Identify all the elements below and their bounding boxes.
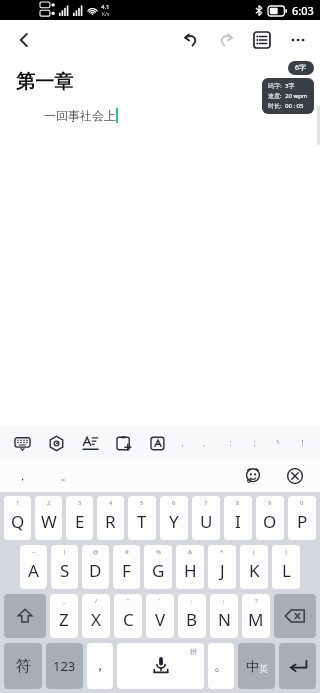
button[interactable]: & [176, 545, 204, 589]
button[interactable]: ' [146, 594, 174, 638]
button[interactable]: 0 [288, 496, 316, 540]
staticText: 中 [246, 658, 259, 674]
staticText: 4 [109, 499, 113, 507]
staticText: L [282, 559, 291, 582]
staticText: M [248, 608, 264, 631]
staticText: N [218, 608, 231, 631]
button[interactable]: 8 [224, 496, 252, 540]
staticText: Z [59, 608, 69, 631]
staticText: 2 [47, 499, 51, 507]
staticText: 9 [268, 499, 272, 507]
button[interactable]: Emoji [238, 461, 268, 491]
staticText: B [186, 608, 198, 631]
button[interactable]: ， [0, 459, 44, 492]
button[interactable]: 9 [256, 496, 284, 540]
staticText: ; [223, 597, 225, 605]
button[interactable]: 1 [4, 496, 31, 540]
staticText: ； [250, 437, 259, 448]
button[interactable]: Translate [148, 433, 168, 453]
button[interactable]: 。 [44, 459, 88, 492]
button[interactable]: ： [218, 426, 242, 459]
button[interactable]: 。 [208, 643, 234, 689]
button[interactable]: Redo [208, 22, 244, 58]
button[interactable]: Shift [4, 594, 46, 638]
staticText: 一回事社会上 [44, 108, 116, 123]
staticText: ( [253, 548, 255, 556]
staticText: U [200, 510, 213, 533]
button[interactable]: 2 [35, 496, 62, 540]
button[interactable]: 123 [46, 643, 83, 689]
staticText: 码字: [268, 82, 282, 90]
staticText: R [105, 510, 116, 533]
button[interactable]: ， [87, 643, 113, 689]
staticText: ? [255, 597, 258, 605]
button[interactable]: ~ [20, 545, 47, 589]
staticText: 拼 [190, 647, 197, 656]
button[interactable]: ? [242, 594, 270, 638]
button[interactable]: / [82, 594, 110, 638]
button[interactable]: | [51, 545, 78, 589]
staticText: 符 [16, 657, 31, 676]
button[interactable]: 中 [238, 643, 275, 689]
button[interactable]: Close keyboard [280, 461, 310, 491]
button[interactable]: 4 [97, 496, 124, 540]
button[interactable]: ( [240, 545, 268, 589]
button[interactable]: ； [242, 426, 266, 459]
button[interactable]: Enter [279, 643, 316, 689]
staticText: K/s [102, 11, 110, 18]
staticText: 速度: [268, 92, 282, 100]
staticText: W [41, 510, 57, 533]
staticText: ， [93, 657, 107, 675]
button[interactable]: Clipboard add [114, 433, 134, 453]
button[interactable]: Outline [244, 22, 280, 58]
staticText: 英 [259, 663, 268, 674]
button[interactable]: " [114, 594, 142, 638]
staticText: 3 [78, 499, 82, 507]
button[interactable]: 码字: [262, 78, 314, 114]
staticText: 20 wpm [285, 92, 308, 100]
button[interactable]: ， [170, 426, 194, 459]
button[interactable]: Voice settings [46, 433, 66, 453]
button[interactable]: 6字 [288, 61, 314, 75]
staticText: V [155, 608, 166, 631]
button[interactable]: Undo [172, 22, 208, 58]
staticText: E [75, 510, 85, 533]
button[interactable]: : [178, 594, 206, 638]
staticText: 00 : 05 [285, 102, 304, 110]
staticText: D [89, 559, 102, 582]
staticText: & [188, 548, 193, 556]
staticText: 、 [202, 437, 211, 448]
button[interactable]: ) [272, 545, 300, 589]
staticText: K [249, 559, 260, 582]
staticText: 丶 [274, 437, 283, 448]
staticText: Y [169, 510, 179, 533]
staticText: 第一章 [16, 70, 73, 94]
button[interactable]: 7 [192, 496, 220, 540]
staticText: 时长: [268, 102, 282, 110]
button[interactable]: % [144, 545, 172, 589]
button[interactable]: * [208, 545, 236, 589]
button[interactable]: # [113, 545, 140, 589]
button[interactable]: 符 [4, 643, 42, 689]
staticText: S [60, 559, 70, 582]
button[interactable]: Keyboard [12, 433, 32, 453]
button[interactable]: Backspace [274, 594, 316, 638]
button[interactable]: 5 [128, 496, 156, 540]
staticText: 。 [214, 657, 228, 675]
button[interactable]: More options [280, 22, 316, 58]
button[interactable]: 6 [160, 496, 188, 540]
staticText: 6:03 [292, 3, 314, 18]
staticText: / [95, 597, 98, 605]
button[interactable]: Back [4, 20, 44, 60]
button[interactable]: Text format [80, 433, 100, 453]
staticText: " [127, 597, 130, 605]
button[interactable]: _ [50, 594, 78, 638]
button[interactable]: @ [82, 545, 109, 589]
button[interactable]: 3 [66, 496, 93, 540]
staticText: ' [159, 597, 161, 605]
button[interactable]: ; [210, 594, 238, 638]
button[interactable]: Space, voice input [117, 643, 204, 689]
button[interactable]: ！ [290, 426, 314, 459]
button[interactable]: 丶 [266, 426, 290, 459]
